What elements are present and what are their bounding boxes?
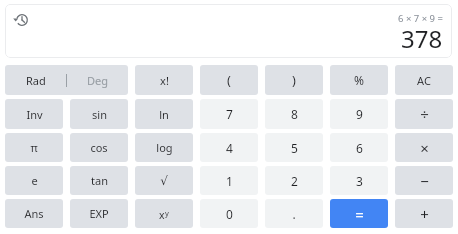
- staticText: Deg: [87, 73, 108, 88]
- staticText: 9: [356, 106, 363, 122]
- staticText: sin: [92, 107, 107, 122]
- staticText: 6 × 7 × 9 =: [398, 12, 443, 25]
- button[interactable]: 2: [265, 166, 323, 195]
- button[interactable]: Inv: [5, 99, 63, 129]
- button[interactable]: 5: [265, 133, 323, 162]
- button[interactable]: 1: [200, 166, 258, 195]
- staticText: 3: [356, 173, 363, 189]
- staticText: 8: [291, 106, 298, 122]
- staticText: !: [166, 73, 169, 88]
- button[interactable]: 9: [330, 99, 388, 129]
- button[interactable]: 4: [200, 133, 258, 162]
- button[interactable]: =: [330, 199, 388, 228]
- staticText: −: [420, 171, 429, 191]
- button[interactable]: (: [200, 65, 258, 95]
- button[interactable]: x: [135, 65, 193, 95]
- staticText: 378: [401, 22, 443, 55]
- button[interactable]: 8: [265, 99, 323, 129]
- staticText: AC: [417, 73, 431, 88]
- staticText: %: [354, 72, 364, 88]
- button[interactable]: History: [8, 6, 36, 34]
- button[interactable]: tan: [70, 166, 128, 195]
- button[interactable]: 3: [330, 166, 388, 195]
- button[interactable]: ×: [395, 133, 453, 162]
- button[interactable]: Rad: [5, 65, 128, 95]
- staticText: x: [159, 208, 165, 222]
- staticText: tan: [91, 173, 108, 188]
- staticText: 6: [356, 140, 363, 156]
- staticText: e: [31, 173, 38, 188]
- staticText: =: [355, 204, 364, 224]
- button[interactable]: +: [395, 199, 453, 228]
- button[interactable]: ): [265, 65, 323, 95]
- button[interactable]: e: [5, 166, 63, 195]
- button[interactable]: EXP: [70, 199, 128, 228]
- staticText: x: [160, 73, 166, 88]
- staticText: 7: [226, 106, 233, 122]
- staticText: √: [160, 174, 168, 188]
- staticText: cos: [90, 140, 108, 155]
- staticText: 4: [226, 140, 233, 156]
- button[interactable]: log: [135, 133, 193, 162]
- button[interactable]: sin: [70, 99, 128, 129]
- staticText: (: [227, 71, 231, 89]
- staticText: π: [30, 140, 38, 155]
- staticText: 0: [226, 206, 233, 222]
- staticText: Rad: [26, 73, 46, 88]
- button[interactable]: √: [135, 166, 193, 195]
- button[interactable]: AC: [395, 65, 453, 95]
- button[interactable]: x: [135, 199, 193, 228]
- staticText: ÷: [420, 104, 429, 124]
- button[interactable]: cos: [70, 133, 128, 162]
- staticText: +: [420, 204, 429, 224]
- staticText: ln: [159, 107, 169, 122]
- staticText: 5: [291, 140, 298, 156]
- staticText: 2: [291, 173, 298, 189]
- staticText: Ans: [24, 206, 44, 221]
- staticText: ): [292, 71, 296, 89]
- staticText: log: [156, 140, 173, 155]
- button[interactable]: %: [330, 65, 388, 95]
- button[interactable]: 7: [200, 99, 258, 129]
- button[interactable]: .: [265, 199, 323, 228]
- button[interactable]: ÷: [395, 99, 453, 129]
- staticText: 1: [226, 173, 233, 189]
- button[interactable]: 6: [330, 133, 388, 162]
- button[interactable]: ln: [135, 99, 193, 129]
- staticText: Inv: [26, 107, 43, 122]
- button[interactable]: Ans: [5, 199, 63, 228]
- button[interactable]: π: [5, 133, 63, 162]
- staticText: ×: [420, 138, 429, 158]
- staticText: EXP: [89, 206, 109, 221]
- button[interactable]: −: [395, 166, 453, 195]
- staticText: .: [292, 206, 296, 222]
- button[interactable]: 0: [200, 199, 258, 228]
- staticText: y: [165, 208, 169, 218]
